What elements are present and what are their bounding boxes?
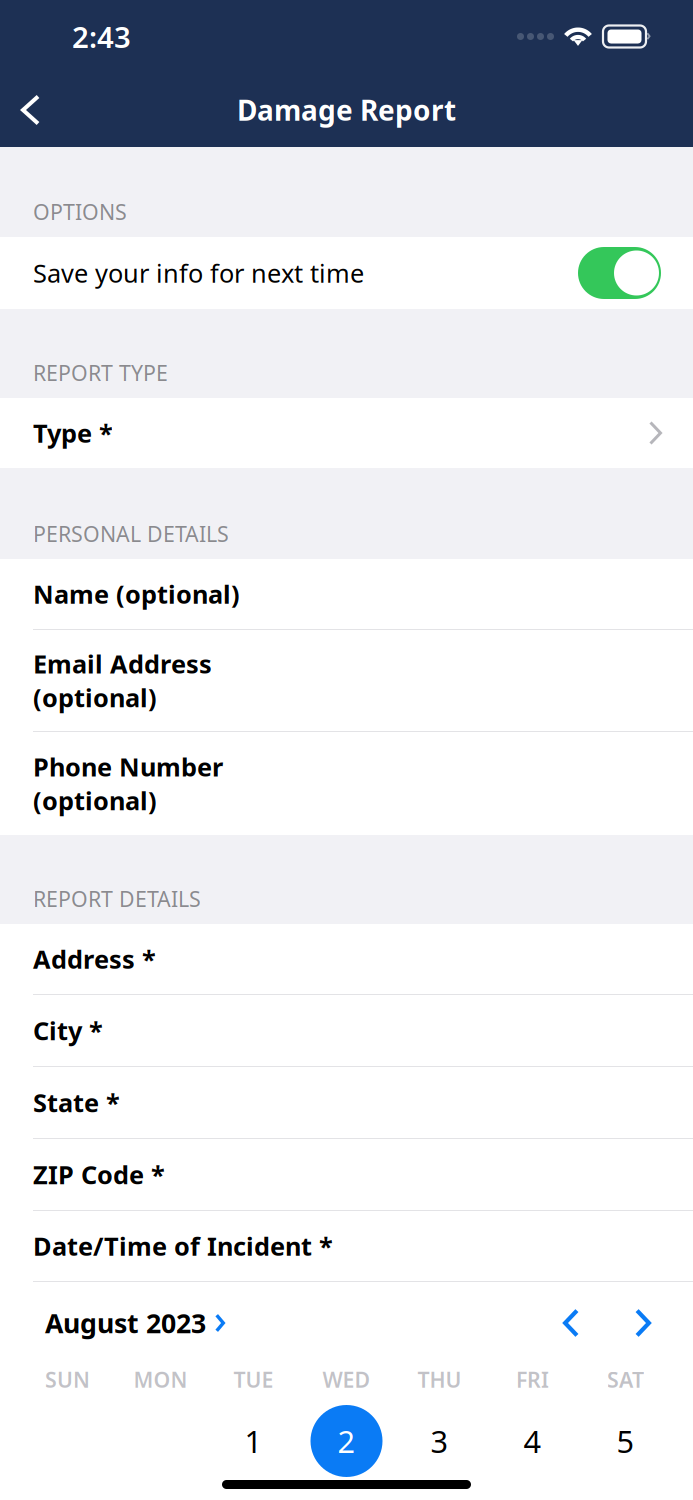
staticText: August 2023 — [45, 1305, 206, 1341]
staticText: Email Address (optional) — [33, 647, 212, 714]
staticText: 5 — [616, 1421, 634, 1461]
staticText: SUN — [45, 1365, 90, 1394]
staticText: MON — [133, 1365, 187, 1394]
button[interactable]: City * — [0, 995, 693, 1067]
button[interactable]: State * — [0, 1067, 693, 1139]
staticText: ZIP Code * — [33, 1158, 165, 1191]
button[interactable]: Save your info for next time — [578, 247, 661, 299]
staticText: PERSONAL DETAILS — [33, 520, 229, 548]
staticText: THU — [417, 1365, 461, 1394]
staticText: WED — [322, 1365, 370, 1394]
button[interactable]: Email Address (optional) — [0, 630, 693, 732]
staticText: TUE — [233, 1365, 273, 1394]
staticText: FRI — [516, 1365, 549, 1394]
staticText: 1 — [244, 1421, 262, 1461]
staticText: City * — [33, 1014, 103, 1047]
staticText: REPORT DETAILS — [33, 885, 201, 913]
staticText: Type * — [33, 416, 113, 450]
button[interactable]: Address * — [0, 924, 693, 995]
button[interactable]: Name (optional) — [0, 559, 693, 630]
staticText: 3 — [430, 1421, 448, 1461]
button[interactable]: Phone Number (optional) — [0, 732, 693, 835]
button[interactable]: ZIP Code * — [0, 1139, 693, 1211]
button[interactable]: Back — [0, 73, 64, 147]
staticText: State * — [33, 1086, 120, 1119]
staticText: OPTIONS — [33, 198, 127, 226]
staticText: REPORT TYPE — [33, 359, 168, 387]
staticText: Phone Number (optional) — [33, 750, 223, 817]
staticText: Damage Report — [237, 91, 456, 129]
button[interactable]: Type * — [0, 398, 693, 468]
staticText: SAT — [607, 1365, 644, 1394]
button[interactable]: Previous month — [547, 1294, 595, 1351]
staticText: Date/Time of Incident * — [33, 1229, 333, 1263]
button[interactable]: August 2023 — [0, 1289, 225, 1357]
staticText: 2:43 — [72, 17, 131, 56]
staticText: Name (optional) — [33, 577, 240, 611]
staticText: 2 — [337, 1421, 355, 1461]
button[interactable]: Date/Time of Incident * — [0, 1211, 693, 1282]
staticText: 4 — [523, 1421, 541, 1461]
staticText: Save your info for next time — [33, 256, 364, 290]
button[interactable]: Next month — [619, 1294, 667, 1351]
staticText: Address * — [33, 942, 156, 976]
